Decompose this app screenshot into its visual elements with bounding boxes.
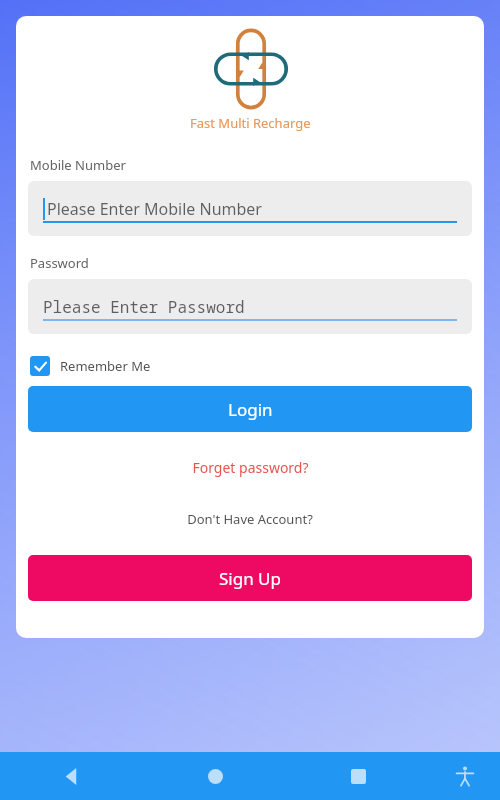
staticText: Fast Multi Recharge (190, 114, 311, 132)
staticText: Don't Have Account? (187, 510, 313, 528)
staticText: Password (30, 254, 89, 272)
staticText: Mobile Number (30, 156, 126, 174)
button[interactable]: Forget password? (192, 458, 309, 477)
staticText: Remember Me (60, 357, 151, 375)
button[interactable]: Mobile Number field (28, 181, 472, 236)
button[interactable]: Home (144, 752, 287, 800)
button[interactable]: Remember Me (30, 356, 151, 376)
staticText: Login (228, 398, 273, 421)
staticText: Sign Up (219, 567, 281, 590)
button[interactable]: Sign Up (28, 555, 472, 601)
button[interactable]: Back (0, 752, 144, 800)
button[interactable]: Password field (28, 279, 472, 334)
staticText: Please Enter Mobile Number (47, 198, 262, 220)
button[interactable]: Accessibility (430, 752, 500, 800)
button[interactable]: Recent apps (287, 752, 430, 800)
button[interactable]: Login (28, 386, 472, 432)
staticText: Please Enter Password (43, 296, 245, 318)
